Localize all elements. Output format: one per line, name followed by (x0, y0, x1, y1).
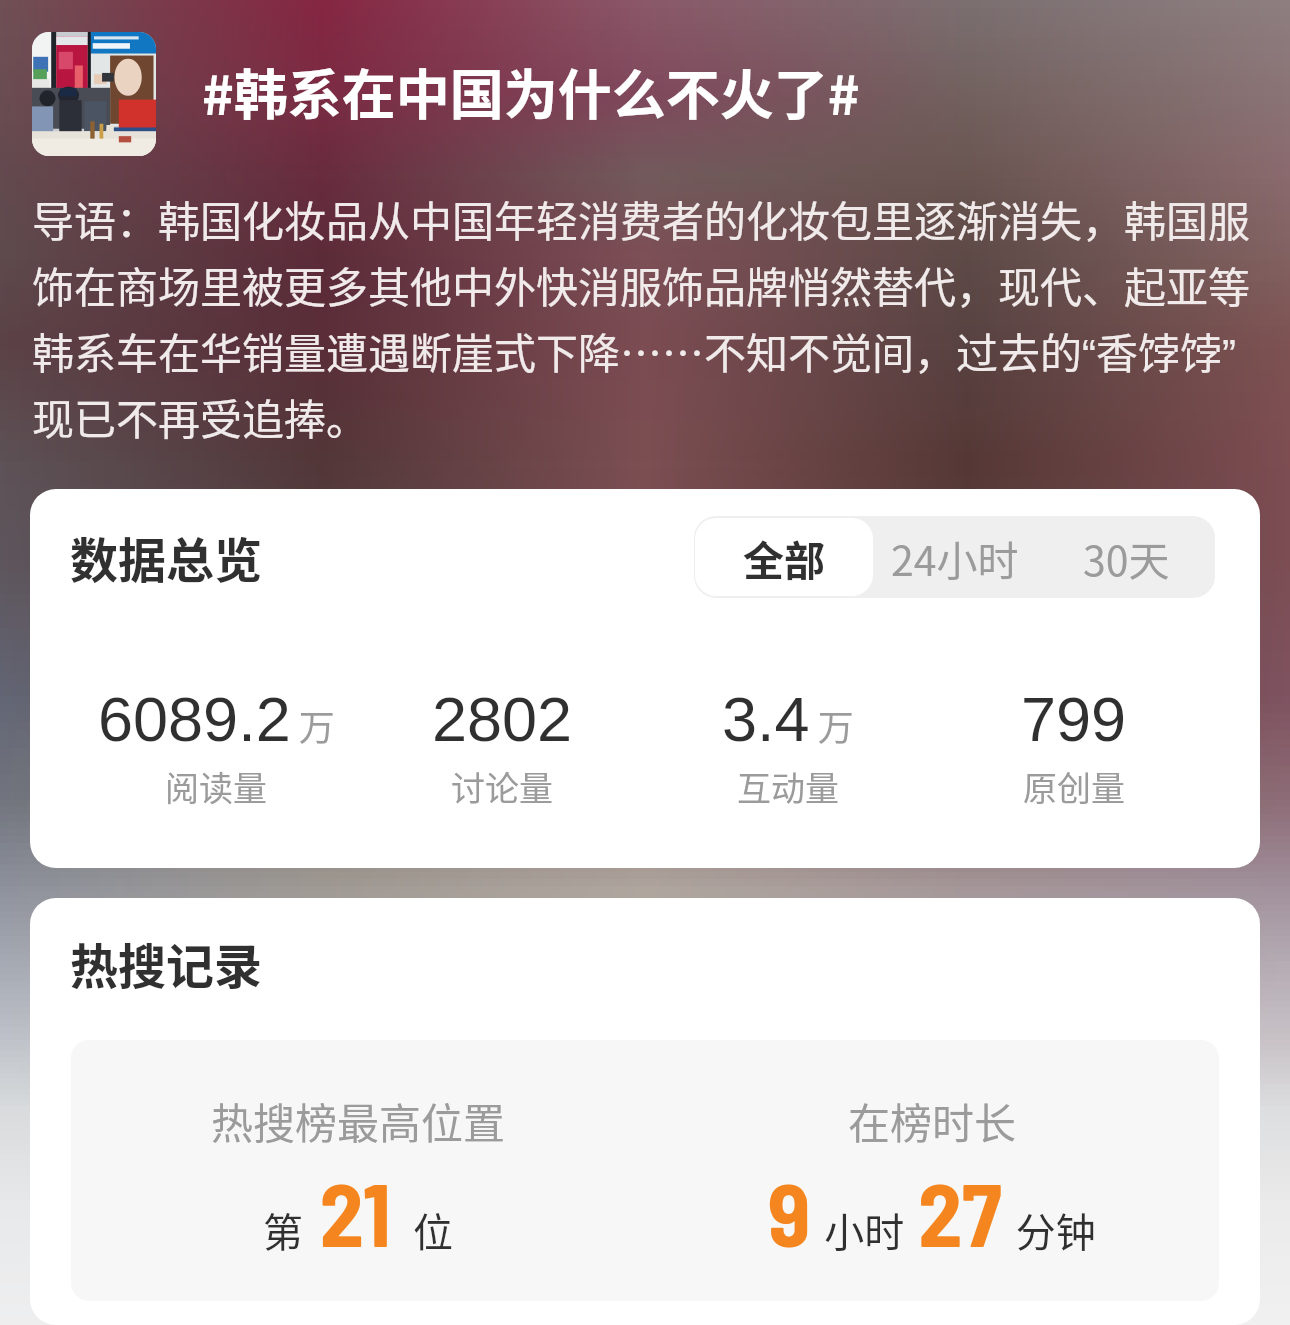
staticText: 3.4 万 (722, 684, 854, 754)
staticText: 热搜记录 (70, 928, 263, 998)
staticText: 互动量 (737, 762, 839, 811)
button[interactable]: 全部 (695, 518, 873, 596)
staticText: 24小时 (891, 528, 1019, 587)
staticText: #韩系在中国为什么不火了# (202, 52, 860, 130)
staticText: 第 21 位 (263, 1159, 454, 1265)
staticText: 全部 (743, 528, 825, 587)
staticText: 导语：韩国化妆品从中国年轻消费者的化妆包里逐渐消失，韩国服 饰在商场里被更多其他… (32, 188, 1251, 447)
staticText: 9 小时 27 分钟 (768, 1159, 1096, 1265)
staticText: 799 (1021, 684, 1127, 754)
staticText: 阅读量 (165, 762, 267, 811)
staticText: 6089.2 万 (98, 684, 335, 754)
staticText: 数据总览 (70, 522, 263, 592)
button[interactable]: 24小时 (873, 516, 1037, 598)
staticText: 讨论量 (451, 762, 553, 811)
staticText: 热搜榜最高位置 (211, 1090, 506, 1151)
staticText: 原创量 (1023, 762, 1125, 811)
staticText: 2802 (432, 684, 573, 754)
button[interactable]: Topic image (32, 32, 156, 156)
staticText: 在榜时长 (848, 1090, 1017, 1151)
staticText: 30天 (1083, 528, 1170, 587)
button[interactable]: 30天 (1037, 516, 1215, 598)
